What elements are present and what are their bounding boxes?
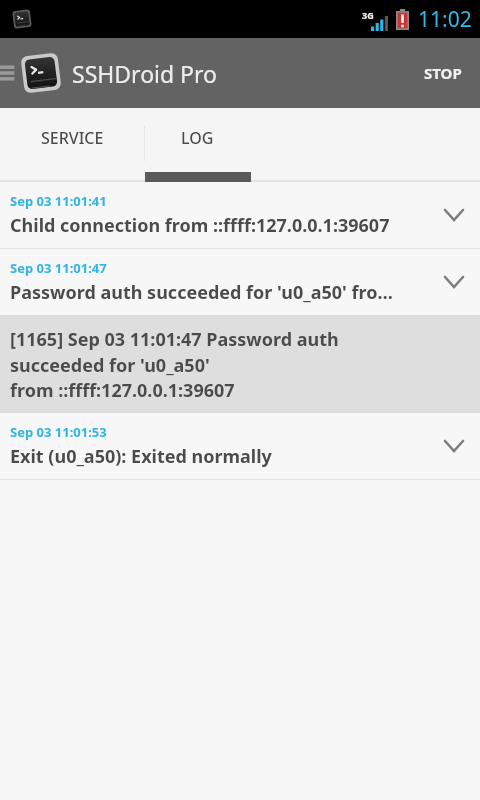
button[interactable]: LOG (144, 108, 251, 182)
staticText: 11:02 (418, 5, 472, 34)
staticText: STOP (424, 63, 462, 83)
staticText: [1165] Sep 03 11:01:47 Password auth suc… (10, 327, 370, 402)
staticText: SERVICE (41, 127, 104, 149)
staticText: Sep 03 11:01:41 (10, 192, 107, 210)
staticText: 3G (362, 9, 374, 21)
staticText: Sep 03 11:01:53 (10, 423, 107, 441)
button[interactable]: STOP (406, 38, 480, 108)
button[interactable]: Sep 03 11:01:53 (0, 413, 480, 479)
button[interactable]: Sep 03 11:01:41 (0, 182, 480, 248)
staticText: Child connection from ::ffff:127.0.0.1:3… (10, 213, 390, 238)
button[interactable]: SERVICE (0, 108, 144, 182)
staticText: SSHDroid Pro (72, 58, 217, 89)
button[interactable]: Open navigation drawer (0, 53, 18, 93)
button[interactable]: Expand entry (436, 264, 472, 300)
staticText: Exit (u0_a50): Exited normally (10, 444, 272, 469)
button[interactable]: Sep 03 11:01:47 (0, 249, 480, 315)
staticText: Password auth succeeded for 'u0_a50' fro… (10, 280, 393, 305)
button[interactable]: Expand entry (436, 197, 472, 233)
button[interactable]: SSHDroid Pro (20, 52, 217, 94)
staticText: LOG (181, 127, 214, 149)
button[interactable]: Expand entry (436, 428, 472, 464)
staticText: Sep 03 11:01:47 (10, 259, 107, 277)
button[interactable]: [1165] Sep 03 11:01:47 Password auth suc… (0, 315, 480, 413)
